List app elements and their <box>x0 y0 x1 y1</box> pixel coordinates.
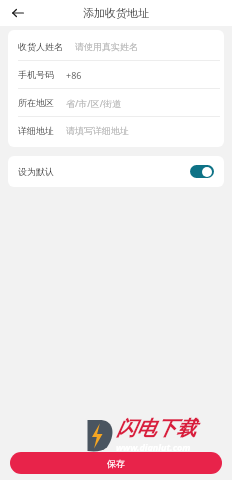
button[interactable]: 手机号码 <box>8 61 224 89</box>
button[interactable]: 保存 <box>10 452 222 474</box>
button[interactable]: Set as default <box>190 165 214 178</box>
button[interactable]: Back <box>8 3 28 23</box>
staticText: www.dianlut.com <box>116 441 191 453</box>
button[interactable]: 收货人姓名 <box>8 33 224 61</box>
button[interactable]: 设为默认 <box>8 156 224 187</box>
staticText: 请填写详细地址 <box>66 125 129 136</box>
staticText: 手机号码 <box>18 69 54 80</box>
button[interactable]: 所在地区 <box>8 89 224 117</box>
button[interactable]: 详细地址 <box>8 117 224 144</box>
staticText: 收货人姓名 <box>18 41 63 52</box>
staticText: 保存 <box>107 458 125 469</box>
staticText: 详细地址 <box>18 125 54 136</box>
staticText: 闪电下载 <box>116 416 196 441</box>
staticText: 请使用真实姓名 <box>75 41 138 52</box>
staticText: 所在地区 <box>18 97 54 108</box>
staticText: 省/市/区/街道 <box>66 97 122 109</box>
staticText: 设为默认 <box>18 166 54 177</box>
staticText: 添加收货地址 <box>83 6 149 20</box>
staticText: +86 <box>66 69 82 81</box>
